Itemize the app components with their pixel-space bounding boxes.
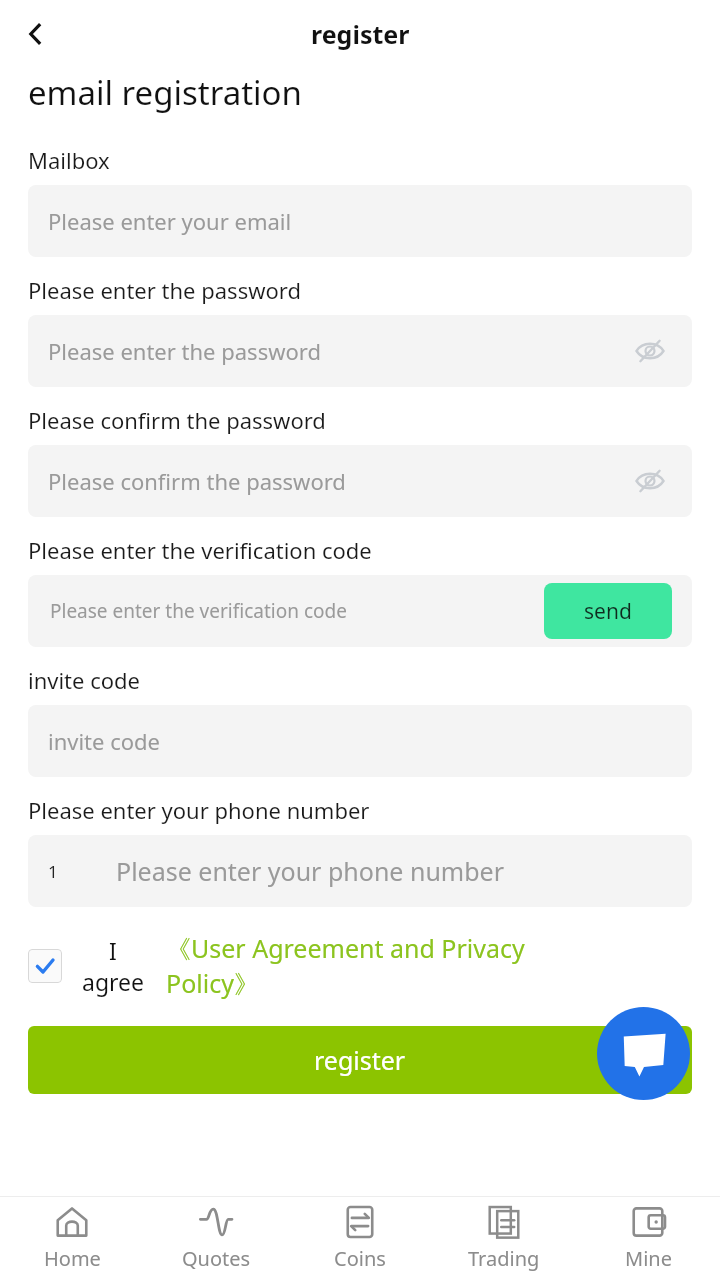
button[interactable]: send — [544, 583, 672, 639]
staticText: Please enter the verification code — [28, 535, 372, 565]
staticText: Mine — [625, 1245, 672, 1272]
button[interactable]: invite code — [28, 705, 692, 777]
button[interactable]: Please confirm the password — [28, 445, 692, 517]
button[interactable]: Please enter your email — [28, 185, 692, 257]
button[interactable]: Mine — [576, 1197, 720, 1280]
staticText: Please enter your phone number — [116, 854, 505, 888]
staticText: Please enter your email — [48, 206, 292, 236]
button[interactable]: Coins — [288, 1197, 432, 1280]
button[interactable]: Please enter the password — [28, 315, 692, 387]
staticText: email registration — [28, 70, 302, 115]
staticText: Quotes — [182, 1245, 251, 1272]
button[interactable]: Home — [0, 1197, 144, 1280]
button[interactable]: register — [28, 1026, 692, 1094]
button[interactable]: Agree checkbox — [28, 949, 62, 983]
button[interactable]: 1 — [28, 835, 692, 907]
staticText: Please confirm the password — [48, 466, 346, 496]
staticText: invite code — [48, 726, 161, 756]
staticText: 1 — [48, 860, 58, 883]
staticText: Please enter the verification code — [50, 598, 347, 624]
button[interactable]: Quotes — [144, 1197, 288, 1280]
staticText: register — [311, 17, 410, 51]
staticText: invite code — [28, 665, 141, 695]
staticText: Please enter the password — [28, 275, 301, 305]
button[interactable]: 《User Agreement and Privacy Policy》 — [166, 931, 576, 1000]
button[interactable]: Back — [8, 6, 64, 62]
staticText: Please enter the password — [48, 336, 321, 366]
button[interactable]: Toggle password visibility — [630, 331, 670, 371]
staticText: Home — [44, 1245, 101, 1272]
staticText: send — [584, 597, 632, 626]
staticText: I agree — [78, 935, 148, 997]
staticText: Please enter your phone number — [28, 795, 370, 825]
staticText: Trading — [468, 1245, 540, 1272]
staticText: register — [314, 1043, 406, 1077]
button[interactable]: Toggle password visibility — [630, 461, 670, 501]
staticText: Please confirm the password — [28, 405, 326, 435]
staticText: Mailbox — [28, 145, 110, 175]
button[interactable]: Customer service chat — [597, 1007, 690, 1100]
button[interactable]: Trading — [432, 1197, 576, 1280]
staticText: Coins — [334, 1245, 386, 1272]
